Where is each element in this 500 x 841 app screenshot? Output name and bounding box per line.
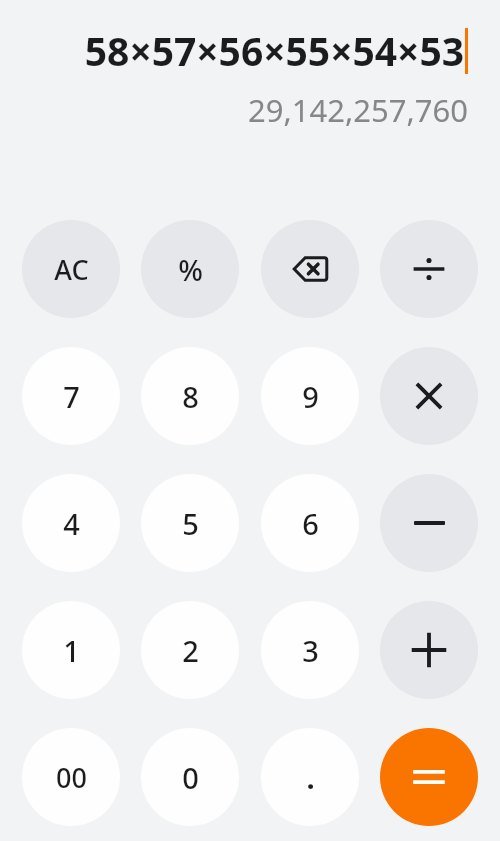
button[interactable]: . bbox=[261, 728, 359, 826]
staticText: . bbox=[306, 758, 315, 797]
button[interactable]: Plus bbox=[380, 601, 478, 699]
staticText: % bbox=[178, 250, 203, 289]
staticText: 3 bbox=[302, 631, 319, 670]
button[interactable]: 2 bbox=[141, 601, 239, 699]
button[interactable]: 4 bbox=[22, 474, 120, 572]
staticText: 2 bbox=[182, 631, 199, 670]
button[interactable]: 5 bbox=[141, 474, 239, 572]
button[interactable]: 8 bbox=[141, 347, 239, 445]
button[interactable]: 1 bbox=[22, 601, 120, 699]
button[interactable]: 7 bbox=[22, 347, 120, 445]
button[interactable]: Multiply bbox=[380, 347, 478, 445]
staticText: 5 bbox=[182, 504, 199, 543]
button[interactable]: 3 bbox=[261, 601, 359, 699]
staticText: AC bbox=[54, 251, 89, 288]
button[interactable]: Divide bbox=[380, 220, 478, 318]
button[interactable]: Equals bbox=[380, 728, 478, 826]
staticText: 9 bbox=[302, 377, 319, 416]
button[interactable]: Minus bbox=[380, 474, 478, 572]
staticText: 7 bbox=[63, 377, 80, 416]
staticText: 0 bbox=[182, 758, 199, 797]
button[interactable]: 00 bbox=[22, 728, 120, 826]
button[interactable]: 9 bbox=[261, 347, 359, 445]
staticText: 1 bbox=[63, 631, 80, 670]
button[interactable]: % bbox=[141, 220, 239, 318]
staticText: 8 bbox=[182, 377, 199, 416]
staticText: 4 bbox=[63, 504, 80, 543]
staticText: 29,142,257,760 bbox=[248, 89, 468, 131]
button[interactable]: AC bbox=[22, 220, 120, 318]
button[interactable]: 6 bbox=[261, 474, 359, 572]
staticText: 00 bbox=[56, 759, 87, 796]
staticText: 6 bbox=[302, 504, 319, 543]
staticText: 58×57×56×55×54×53 bbox=[84, 24, 464, 77]
button[interactable]: Backspace bbox=[261, 220, 359, 318]
button[interactable]: 0 bbox=[141, 728, 239, 826]
